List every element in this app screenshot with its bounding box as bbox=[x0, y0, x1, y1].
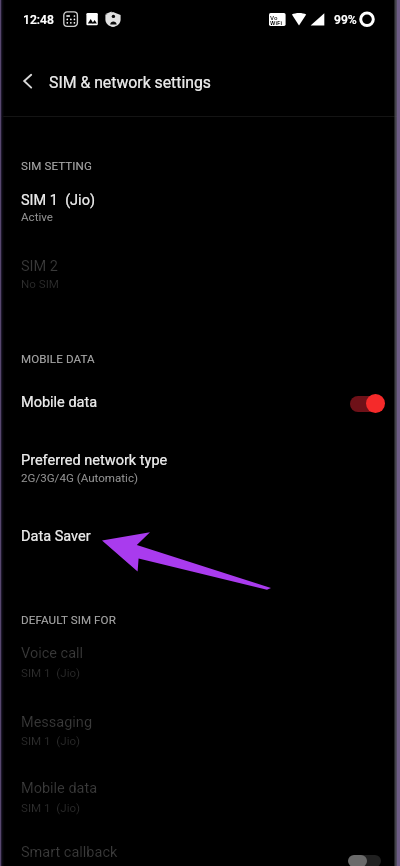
button[interactable] bbox=[0, 771, 400, 821]
button[interactable] bbox=[0, 249, 400, 297]
button[interactable]: Back bbox=[10, 64, 46, 100]
staticText: Messaging bbox=[21, 714, 93, 731]
staticText: Preferred network type bbox=[21, 452, 168, 469]
staticText: No SIM bbox=[21, 277, 59, 291]
staticText: SIM 1 (Jio) bbox=[21, 734, 81, 748]
staticText: Voice call bbox=[21, 645, 84, 662]
button[interactable]: Smart callback toggle bbox=[348, 855, 384, 866]
staticText: SIM SETTING bbox=[21, 159, 92, 173]
staticText: Mobile data bbox=[21, 780, 98, 797]
button[interactable] bbox=[0, 518, 400, 556]
staticText: Mobile data bbox=[21, 394, 98, 411]
button[interactable] bbox=[0, 834, 400, 866]
staticText: 99% bbox=[334, 13, 357, 27]
staticText: DEFAULT SIM FOR bbox=[21, 613, 116, 627]
button[interactable] bbox=[0, 182, 400, 230]
button[interactable] bbox=[0, 636, 400, 686]
staticText: MOBILE DATA bbox=[21, 352, 95, 366]
staticText: Vo bbox=[270, 14, 278, 21]
staticText: SIM 1 (Jio) bbox=[21, 192, 95, 209]
staticText: WiFi bbox=[270, 19, 283, 26]
button[interactable]: Mobile data toggle bbox=[350, 394, 385, 414]
staticText: Smart callback bbox=[21, 844, 118, 861]
staticText: Active bbox=[21, 210, 53, 224]
staticText: SIM 2 bbox=[21, 258, 58, 275]
button[interactable] bbox=[0, 440, 400, 492]
button[interactable] bbox=[0, 384, 400, 422]
staticText: 2G/3G/4G (Automatic) bbox=[21, 471, 139, 485]
button[interactable] bbox=[0, 704, 400, 754]
staticText: SIM 1 (Jio) bbox=[21, 666, 81, 680]
staticText: 12:48 bbox=[23, 13, 54, 27]
staticText: SIM & network settings bbox=[49, 73, 212, 92]
staticText: SIM 1 (Jio) bbox=[21, 801, 81, 815]
staticText: Data Saver bbox=[21, 528, 91, 545]
